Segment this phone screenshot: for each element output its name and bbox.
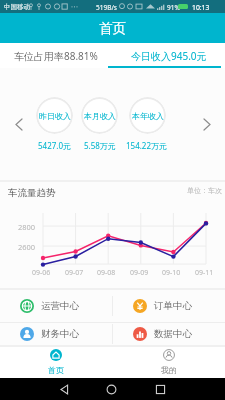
- button[interactable]: 运营中心: [0, 290, 112, 322]
- staticText: 91%: [167, 3, 180, 12]
- staticText: 5427.0元: [38, 140, 72, 151]
- staticText: 首页: [99, 20, 126, 37]
- button[interactable]: 订单中心: [113, 290, 225, 322]
- staticText: 09-07: [65, 268, 84, 278]
- staticText: 中国移动: [4, 3, 30, 11]
- staticText: 519B/s: [96, 3, 117, 12]
- button[interactable]: Previous: [6, 112, 31, 137]
- staticText: 昨日收入: [39, 111, 71, 121]
- staticText: 我的: [161, 365, 177, 375]
- button[interactable]: Next: [194, 112, 219, 137]
- staticText: 首页: [48, 365, 64, 375]
- staticText: 今日收入945.0元: [131, 49, 207, 63]
- staticText: 2800: [18, 222, 36, 232]
- staticText: 2600: [18, 242, 36, 252]
- button[interactable]: 车位占用率88.81%: [0, 43, 112, 68]
- staticText: 运营中心: [41, 300, 79, 312]
- button[interactable]: Recents: [148, 378, 172, 400]
- staticText: 本年收入: [132, 111, 164, 121]
- staticText: 09-09: [130, 268, 149, 278]
- staticText: 车流量趋势: [8, 187, 56, 199]
- staticText: 09-10: [162, 268, 181, 278]
- staticText: 09-08: [97, 268, 116, 278]
- button[interactable]: 本月收入: [81, 97, 118, 134]
- button[interactable]: 首页: [0, 347, 112, 378]
- button[interactable]: 今日收入945.0元: [112, 43, 225, 68]
- button[interactable]: 财务中心: [0, 323, 112, 345]
- button[interactable]: Home: [99, 378, 123, 400]
- button[interactable]: Back: [52, 378, 76, 400]
- staticText: 154.22万元: [126, 140, 168, 151]
- button[interactable]: 我的: [112, 347, 225, 378]
- staticText: 单位：车次: [187, 186, 222, 195]
- staticText: 订单中心: [154, 300, 192, 312]
- staticText: 09-06: [32, 268, 51, 278]
- staticText: 车位占用率88.81%: [14, 49, 98, 63]
- button[interactable]: 数据中心: [113, 323, 225, 345]
- button[interactable]: 昨日收入: [36, 97, 73, 134]
- button[interactable]: 本年收入: [129, 97, 166, 134]
- staticText: 数据中心: [154, 328, 192, 340]
- staticText: 本月收入: [84, 111, 116, 121]
- staticText: 财务中心: [41, 328, 79, 340]
- staticText: 10:13: [192, 3, 210, 12]
- staticText: 09-11: [195, 268, 214, 278]
- staticText: 5.58万元: [84, 140, 116, 151]
